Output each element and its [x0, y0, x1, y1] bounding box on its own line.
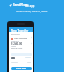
staticText: NOTE: [11, 45, 16, 47]
staticText: Get app: [25, 4, 35, 7]
button[interactable]: Get app: [25, 4, 35, 7]
staticText: AMOUNT: [11, 40, 19, 42]
staticText: New Transfer: [11, 29, 29, 33]
staticText: Send now: [16, 67, 27, 70]
button[interactable]: Alex Morgan: [11, 37, 32, 40]
staticText: RECIPIENT: [11, 33, 21, 35]
staticText: Dinner split: [11, 47, 23, 50]
staticText: SendFlow: [13, 3, 28, 7]
staticText: Alex Morgan: [14, 37, 28, 40]
staticText: $ 240.00: [11, 42, 23, 46]
button[interactable]: Send now: [11, 67, 32, 70]
staticText: Send money, track it, done.: [0, 9, 64, 12]
